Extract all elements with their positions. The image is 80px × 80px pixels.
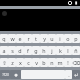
button[interactable]: q <box>0 34 8 43</box>
button[interactable]: m <box>56 58 64 67</box>
staticText: ↵ <box>74 72 79 78</box>
button[interactable]: v <box>32 58 40 67</box>
button[interactable]: a <box>0 46 8 55</box>
staticText: k <box>59 47 62 54</box>
staticText: y <box>43 35 46 42</box>
staticText: ⇧ <box>2 60 7 66</box>
staticText: v <box>35 59 38 66</box>
button[interactable]: r <box>24 34 32 43</box>
button[interactable]: d <box>16 46 24 55</box>
button[interactable]: Shift <box>0 58 8 67</box>
button[interactable]: Voice input <box>10 70 21 79</box>
staticText: i <box>59 35 61 42</box>
button[interactable]: Account <box>2 11 7 16</box>
staticText: m <box>57 59 63 66</box>
staticText: o <box>66 35 70 42</box>
staticText: ⌫ <box>72 60 80 66</box>
button[interactable]: g <box>32 46 40 55</box>
staticText: q <box>2 35 6 42</box>
staticText: z <box>11 59 14 66</box>
button[interactable]: n <box>48 58 56 67</box>
button[interactable]: . <box>65 70 72 79</box>
staticText: e <box>18 35 22 42</box>
button[interactable]: x <box>16 58 24 67</box>
staticText: f <box>27 47 29 54</box>
button[interactable]: k <box>56 46 64 55</box>
staticText: w <box>10 35 15 42</box>
staticText: r <box>27 35 30 42</box>
button[interactable]: o <box>64 34 72 43</box>
button[interactable]: ! <box>64 58 72 67</box>
staticText: c <box>27 59 30 66</box>
button[interactable]: i <box>56 34 64 43</box>
staticText: a <box>2 47 6 54</box>
staticText: u <box>50 35 54 42</box>
staticText: ! <box>67 59 69 66</box>
button[interactable]: c <box>24 58 32 67</box>
staticText: . <box>68 71 70 78</box>
button[interactable]: ñ <box>72 46 80 55</box>
button[interactable]: y <box>40 34 48 43</box>
staticText: t <box>35 35 37 42</box>
button[interactable]: p <box>72 34 80 43</box>
button[interactable]: Enter <box>72 70 80 79</box>
button[interactable]: j <box>48 46 56 55</box>
staticText: h <box>42 47 46 54</box>
button[interactable]: u <box>48 34 56 43</box>
staticText: ?123 <box>2 73 9 77</box>
button[interactable]: h <box>40 46 48 55</box>
staticText: p <box>74 35 78 42</box>
button[interactable]: w <box>8 34 16 43</box>
button[interactable]: l <box>64 46 72 55</box>
staticText: l <box>67 47 69 54</box>
staticText: n <box>50 59 54 66</box>
button[interactable]: z <box>8 58 16 67</box>
staticText: ● <box>14 73 18 77</box>
button[interactable]: b <box>40 58 48 67</box>
staticText: b <box>42 59 46 66</box>
staticText: x <box>19 59 22 66</box>
button[interactable]: ?123 <box>0 70 10 79</box>
staticText: g <box>34 47 38 54</box>
staticText: d <box>18 47 22 54</box>
button[interactable]: t <box>32 34 40 43</box>
button[interactable]: f <box>24 46 32 55</box>
button[interactable]: s <box>8 46 16 55</box>
button[interactable]: e <box>16 34 24 43</box>
staticText: s <box>11 47 14 54</box>
staticText: j <box>51 47 53 54</box>
button[interactable]: Backspace <box>72 58 80 67</box>
staticText: ñ <box>74 47 78 54</box>
